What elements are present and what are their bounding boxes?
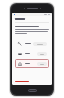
button[interactable]: Call support — [15, 39, 49, 48]
button[interactable]: Bank transfer — [15, 59, 49, 68]
button[interactable]: Card options — [15, 49, 49, 58]
